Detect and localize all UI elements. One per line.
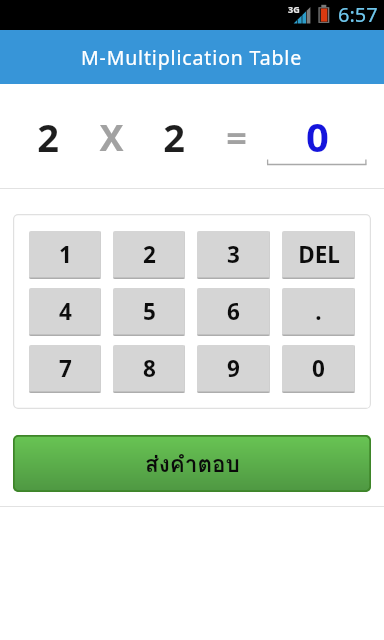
button[interactable]: 3 bbox=[197, 231, 270, 279]
staticText: 6 bbox=[227, 296, 240, 327]
staticText: 2 bbox=[163, 111, 185, 163]
staticText: M-Multiplication Table bbox=[81, 44, 303, 71]
button[interactable]: M-Multiplication Table bbox=[0, 30, 384, 84]
button[interactable]: 8 bbox=[113, 345, 185, 393]
button[interactable]: 9 bbox=[197, 345, 270, 393]
staticText: = bbox=[226, 113, 247, 162]
staticText: X bbox=[99, 113, 124, 162]
button[interactable]: 7 bbox=[29, 345, 101, 393]
other: Battery low bbox=[316, 3, 332, 25]
staticText: 0 bbox=[312, 353, 325, 384]
button[interactable]: 1 bbox=[29, 231, 101, 279]
button[interactable]: ส่งคำตอบ bbox=[13, 435, 371, 492]
staticText: 4 bbox=[59, 296, 72, 327]
staticText: 7 bbox=[59, 353, 72, 384]
staticText: 2 bbox=[37, 111, 59, 163]
staticText: 6:57 bbox=[338, 1, 378, 28]
button[interactable]: DEL bbox=[282, 231, 355, 279]
staticText: ส่งคำตอบ bbox=[145, 446, 240, 482]
staticText: 9 bbox=[227, 353, 240, 384]
button[interactable]: 5 bbox=[113, 288, 185, 336]
staticText: 1 bbox=[59, 239, 72, 270]
staticText: 3G bbox=[288, 3, 300, 15]
other: Mobile signal, 3G bbox=[288, 2, 314, 26]
button[interactable]: Answer field bbox=[267, 110, 367, 165]
staticText: 3 bbox=[227, 239, 240, 270]
staticText: 8 bbox=[143, 353, 156, 384]
staticText: 5 bbox=[143, 296, 156, 327]
staticText: . bbox=[315, 296, 322, 327]
staticText: 0 bbox=[306, 109, 329, 163]
button[interactable]: 2 bbox=[113, 231, 185, 279]
staticText: 2 bbox=[143, 239, 156, 270]
button[interactable]: . bbox=[282, 288, 355, 336]
button[interactable]: 0 bbox=[282, 345, 355, 393]
button[interactable]: 6 bbox=[197, 288, 270, 336]
staticText: DEL bbox=[298, 239, 340, 270]
button[interactable]: 4 bbox=[29, 288, 101, 336]
